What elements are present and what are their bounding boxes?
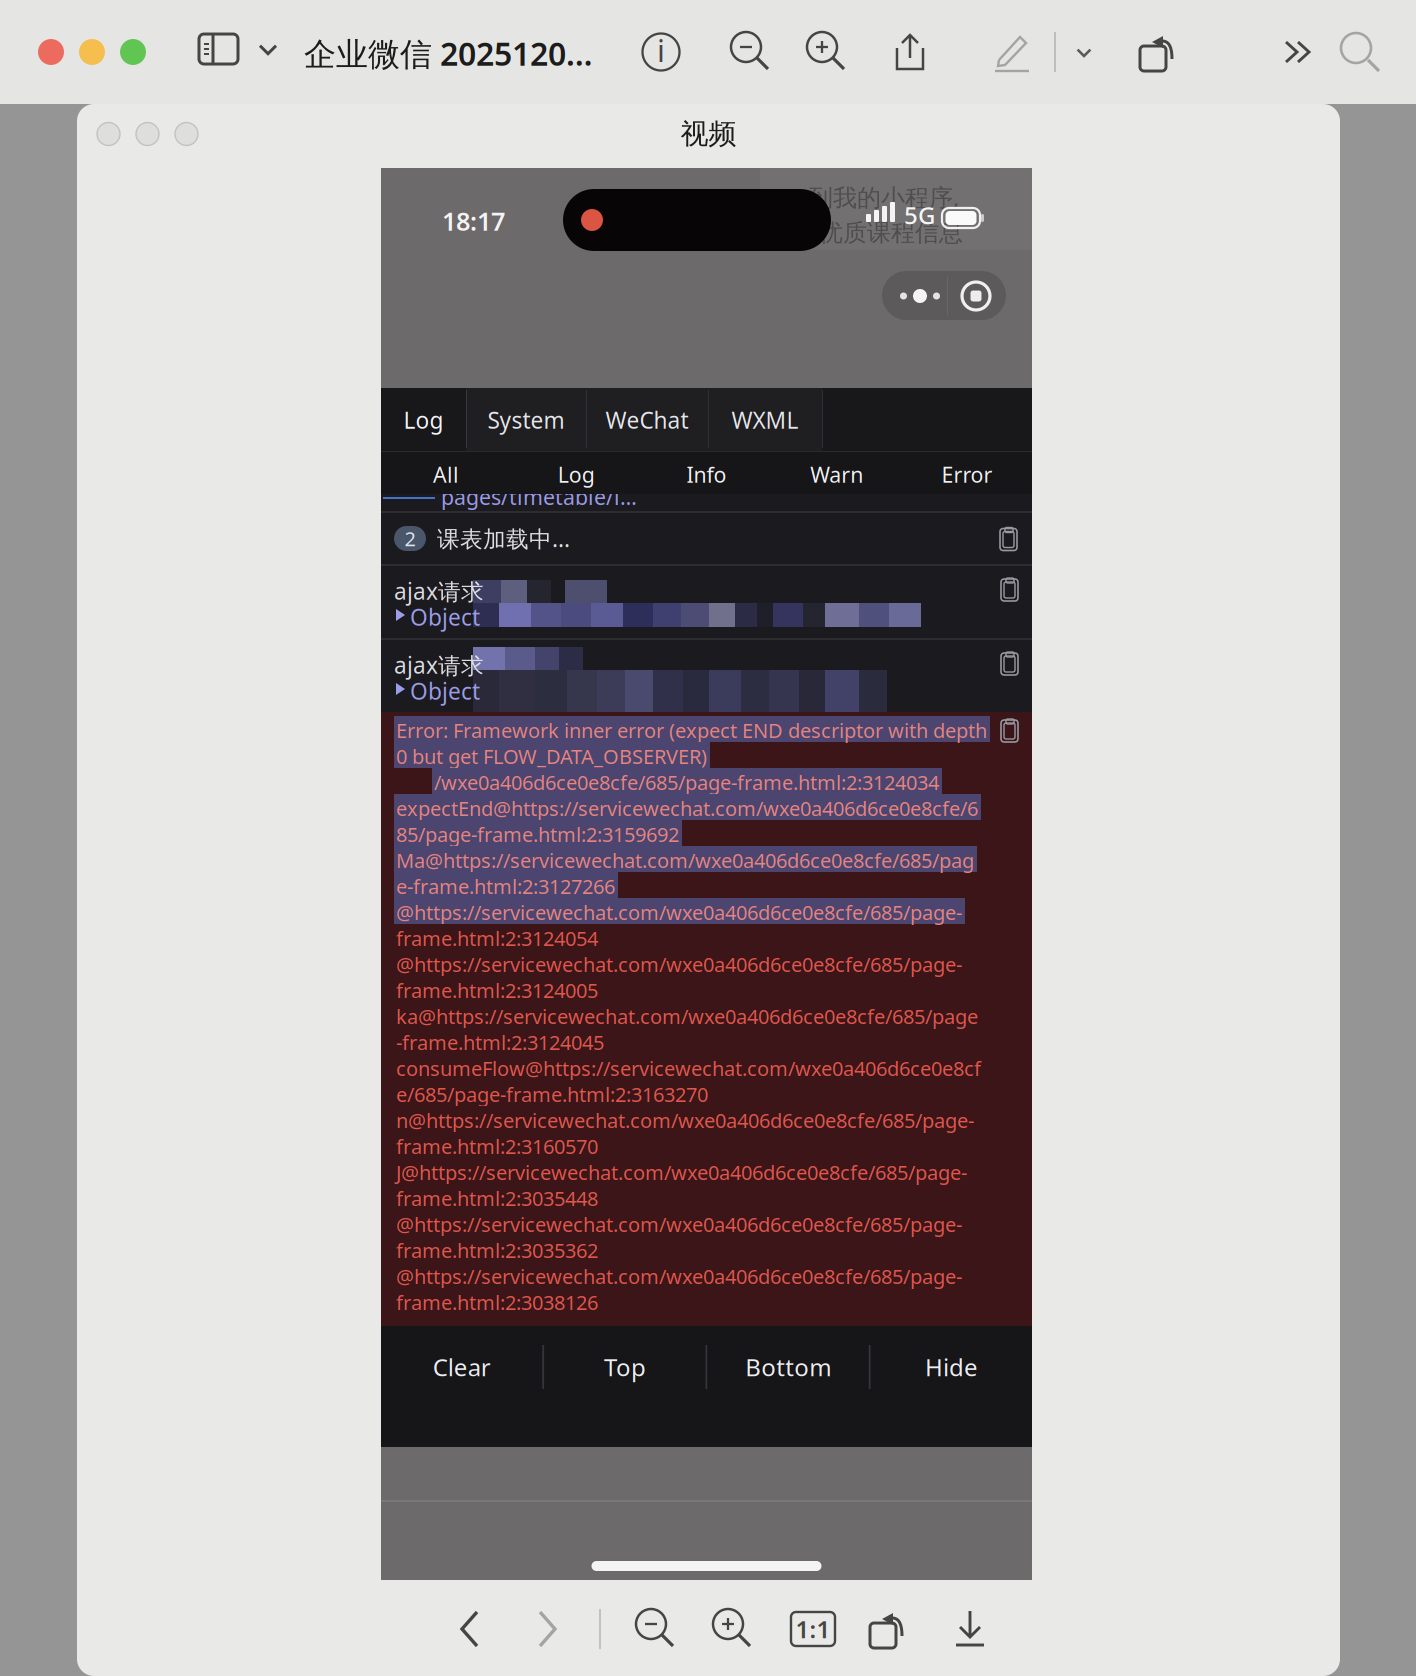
staticText: 课表加载中...	[437, 523, 570, 553]
staticText: @https://servicewechat.com/wxe0a406d6ce0…	[396, 899, 962, 926]
staticText: 1:1	[795, 1613, 830, 1645]
button[interactable]: WeChat	[586, 388, 708, 452]
button[interactable]: Info	[638, 29, 684, 75]
button[interactable]: Search	[1337, 29, 1383, 75]
staticText: Error: Framework inner error (expect END…	[396, 717, 987, 744]
staticText: Hide	[925, 1351, 978, 1383]
staticText: i	[657, 30, 665, 70]
staticText: 0 but get FLOW_DATA_OBSERVER)	[396, 743, 707, 770]
staticText: Info	[686, 460, 726, 489]
staticText: consumeFlow@https://servicewechat.com/wx…	[396, 1055, 981, 1082]
staticText: WeChat	[605, 405, 688, 435]
staticText: 到我的小程序,	[809, 181, 959, 213]
staticText: frame.html:2:3124005	[396, 977, 598, 1004]
staticText: frame.html:2:3035362	[396, 1237, 598, 1264]
button[interactable]: Close	[38, 39, 64, 65]
button[interactable]: Previous	[453, 1607, 487, 1651]
staticText: frame.html:2:3035448	[396, 1185, 598, 1212]
button[interactable]: Clear	[381, 1331, 542, 1403]
button[interactable]: Markup tools	[1075, 46, 1093, 59]
button[interactable]: All	[381, 452, 511, 497]
button[interactable]: Info	[641, 452, 772, 497]
button[interactable]: Top	[544, 1331, 705, 1403]
staticText: ajax请求	[394, 650, 484, 680]
staticText: Bottom	[745, 1351, 831, 1383]
button[interactable]: Next	[530, 1607, 564, 1651]
staticText: 5G	[904, 199, 935, 231]
button[interactable]: Minimize	[79, 39, 105, 65]
staticText: Log	[558, 460, 595, 489]
staticText: @https://servicewechat.com/wxe0a406d6ce0…	[396, 951, 962, 978]
staticText: Error	[941, 460, 992, 489]
staticText: /wxe0a406d6ce0e8cfe/685/page-frame.html:…	[434, 769, 939, 796]
button[interactable]: Rotate	[1139, 29, 1183, 75]
staticText: Clear	[433, 1351, 491, 1383]
button[interactable]: Share	[887, 29, 933, 75]
button[interactable]: Bottom	[707, 1331, 869, 1403]
button[interactable]: System	[466, 388, 586, 452]
staticText: 视频	[680, 117, 736, 151]
staticText: frame.html:2:3038126	[396, 1289, 598, 1316]
staticText: Warn	[810, 460, 863, 489]
button[interactable]: Actual size	[789, 1606, 837, 1652]
staticText: 优质课程信息	[819, 218, 963, 247]
button[interactable]: More toolbar items	[1279, 33, 1317, 71]
staticText: All	[433, 460, 459, 489]
staticText: J@https://servicewechat.com/wxe0a406d6ce…	[396, 1159, 967, 1186]
staticText: @https://servicewechat.com/wxe0a406d6ce0…	[396, 1211, 962, 1238]
staticText: ajax请求	[394, 576, 484, 606]
button[interactable]: Hide	[871, 1331, 1032, 1403]
staticText: Top	[604, 1351, 646, 1383]
staticText: Object	[410, 676, 480, 706]
staticText: pages/timetable/index	[441, 483, 641, 511]
button[interactable]: Zoom in	[710, 1606, 756, 1652]
staticText: -frame.html:2:3124045	[396, 1029, 604, 1056]
staticText: 18:17	[442, 204, 505, 238]
button[interactable]: Save	[947, 1606, 993, 1652]
button[interactable]: Log	[381, 388, 466, 452]
staticText: Ma@https://servicewechat.com/wxe0a406d6c…	[396, 847, 974, 874]
staticText: Log	[403, 405, 443, 435]
button[interactable]: Sidebar	[199, 33, 279, 65]
staticText: e/685/page-frame.html:2:3163270	[396, 1081, 708, 1108]
staticText: e-frame.html:2:3127266	[396, 873, 615, 900]
staticText: 企业微信 2025120…	[304, 32, 593, 74]
button[interactable]: Warn	[772, 452, 902, 497]
button[interactable]: Zoom out	[633, 1606, 679, 1652]
button[interactable]: Rotate	[869, 1606, 913, 1652]
button[interactable]: WXML	[708, 388, 822, 452]
button[interactable]: Error	[902, 452, 1032, 497]
staticText: @https://servicewechat.com/wxe0a406d6ce0…	[396, 1263, 962, 1290]
staticText: WXML	[731, 405, 798, 435]
button[interactable]: Log	[511, 452, 641, 497]
staticText: ka@https://servicewechat.com/wxe0a406d6c…	[396, 1003, 978, 1030]
button[interactable]: Zoom in	[804, 29, 850, 75]
staticText: frame.html:2:3160570	[396, 1133, 598, 1160]
button[interactable]: Zoom out	[728, 29, 774, 75]
button[interactable]: Markup	[989, 29, 1035, 75]
staticText: frame.html:2:3124054	[396, 925, 598, 952]
staticText: 2	[404, 525, 415, 552]
staticText: expectEnd@https://servicewechat.com/wxe0…	[396, 795, 978, 822]
staticText: System	[487, 405, 564, 435]
staticText: n@https://servicewechat.com/wxe0a406d6ce…	[396, 1107, 974, 1134]
button[interactable]: Zoom	[120, 39, 146, 65]
staticText: 85/page-frame.html:2:3159692	[396, 821, 679, 848]
staticText: Object	[410, 602, 480, 632]
